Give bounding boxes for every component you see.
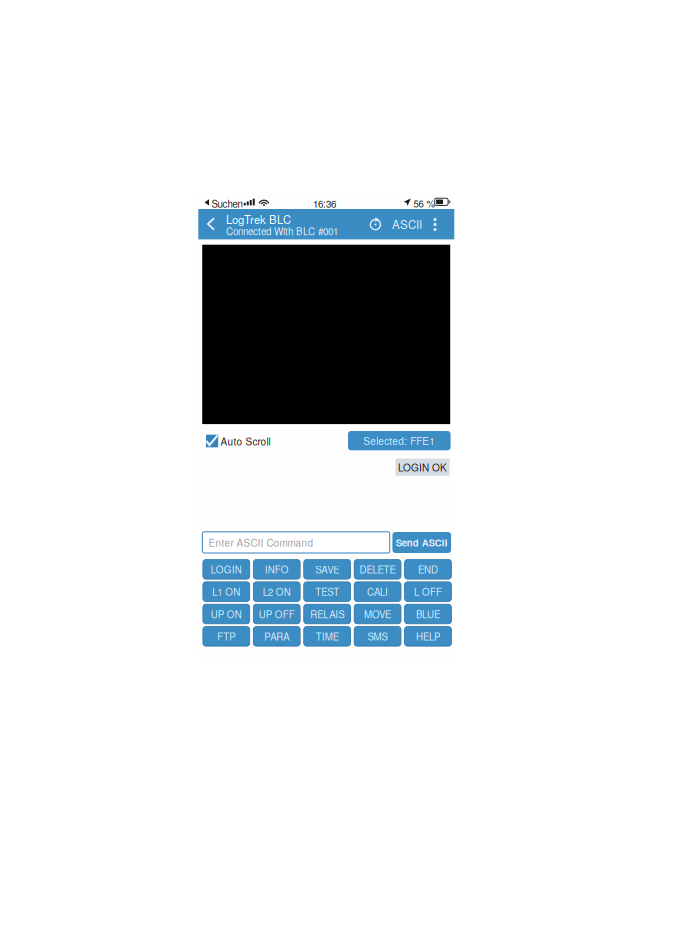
- button[interactable]: BLUE: [405, 604, 451, 624]
- staticText: INFO: [265, 562, 289, 576]
- staticText: L2 ON: [263, 585, 291, 599]
- staticText: CALI: [367, 585, 388, 599]
- staticText: Selected: FFE1: [363, 433, 435, 448]
- staticText: 16:36: [313, 196, 336, 208]
- staticText: LOGIN OK: [398, 460, 447, 474]
- staticText: FTP: [217, 629, 235, 643]
- staticText: L1 ON: [212, 585, 240, 599]
- staticText: UP OFF: [259, 607, 295, 621]
- button[interactable]: L OFF: [405, 582, 451, 601]
- staticText: Auto Scroll: [221, 434, 271, 448]
- button[interactable]: FTP: [203, 626, 250, 646]
- staticText: 56 %: [413, 196, 435, 208]
- staticText: PARA: [264, 629, 289, 643]
- button[interactable]: HELP: [405, 626, 451, 646]
- staticText: DELETE: [360, 562, 396, 576]
- button[interactable]: Auto Scroll: [206, 435, 218, 447]
- staticText: TIME: [316, 629, 339, 643]
- button[interactable]: L1 ON: [203, 582, 250, 601]
- staticText: LOGIN: [211, 562, 242, 576]
- staticText: Send ASCII: [396, 536, 448, 549]
- button[interactable]: END: [405, 559, 451, 579]
- staticText: END: [418, 562, 438, 576]
- staticText: BLUE: [416, 607, 440, 621]
- staticText: TEST: [315, 585, 339, 599]
- staticText: RELAIS: [310, 607, 344, 621]
- button[interactable]: CALI: [354, 582, 401, 601]
- button[interactable]: Enter ASCII Command: [202, 532, 390, 553]
- staticText: LogTrek BLC: [226, 211, 291, 223]
- button[interactable]: Selected: FFE1: [348, 431, 451, 450]
- staticText: Suchen: [211, 196, 242, 208]
- staticText: ASCII: [392, 216, 422, 232]
- button[interactable]: INFO: [253, 559, 300, 579]
- staticText: MOVE: [364, 607, 391, 621]
- button[interactable]: Back: [201, 211, 221, 237]
- button[interactable]: UP ON: [203, 604, 250, 624]
- button[interactable]: SAVE: [304, 559, 350, 579]
- button[interactable]: SMS: [354, 626, 401, 646]
- button[interactable]: L2 ON: [253, 582, 300, 601]
- staticText: Connected With BLC #001: [226, 224, 338, 235]
- button[interactable]: RELAIS: [304, 604, 350, 624]
- button[interactable]: PARA: [253, 626, 300, 646]
- button[interactable]: MOVE: [354, 604, 401, 624]
- button[interactable]: Send ASCII: [392, 532, 451, 553]
- staticText: HELP: [416, 629, 440, 643]
- button[interactable]: UP OFF: [253, 604, 300, 624]
- staticText: Enter ASCII Command: [208, 535, 313, 549]
- button[interactable]: LOGIN: [203, 559, 250, 579]
- button[interactable]: TIME: [304, 626, 350, 646]
- button[interactable]: DELETE: [354, 559, 401, 579]
- staticText: UP ON: [211, 607, 242, 621]
- button[interactable]: ASCII: [392, 214, 426, 234]
- button[interactable]: More options: [428, 216, 442, 233]
- staticText: L OFF: [414, 585, 442, 599]
- button[interactable]: TEST: [304, 582, 350, 601]
- staticText: SAVE: [315, 562, 339, 576]
- button[interactable]: Refresh: [366, 214, 385, 234]
- staticText: SMS: [368, 629, 388, 643]
